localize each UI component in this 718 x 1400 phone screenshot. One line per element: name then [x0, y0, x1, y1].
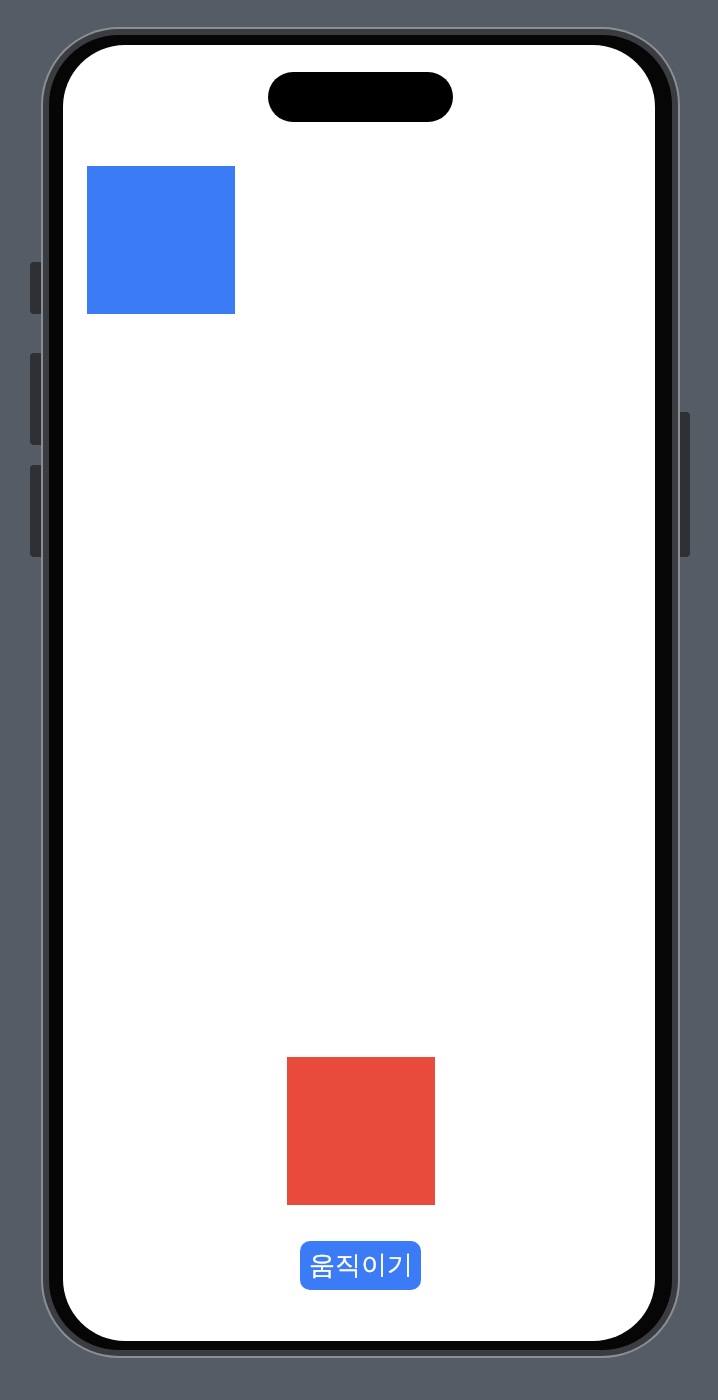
button[interactable]: 움직이기: [300, 1241, 421, 1290]
staticText: 움직이기: [309, 1249, 413, 1282]
